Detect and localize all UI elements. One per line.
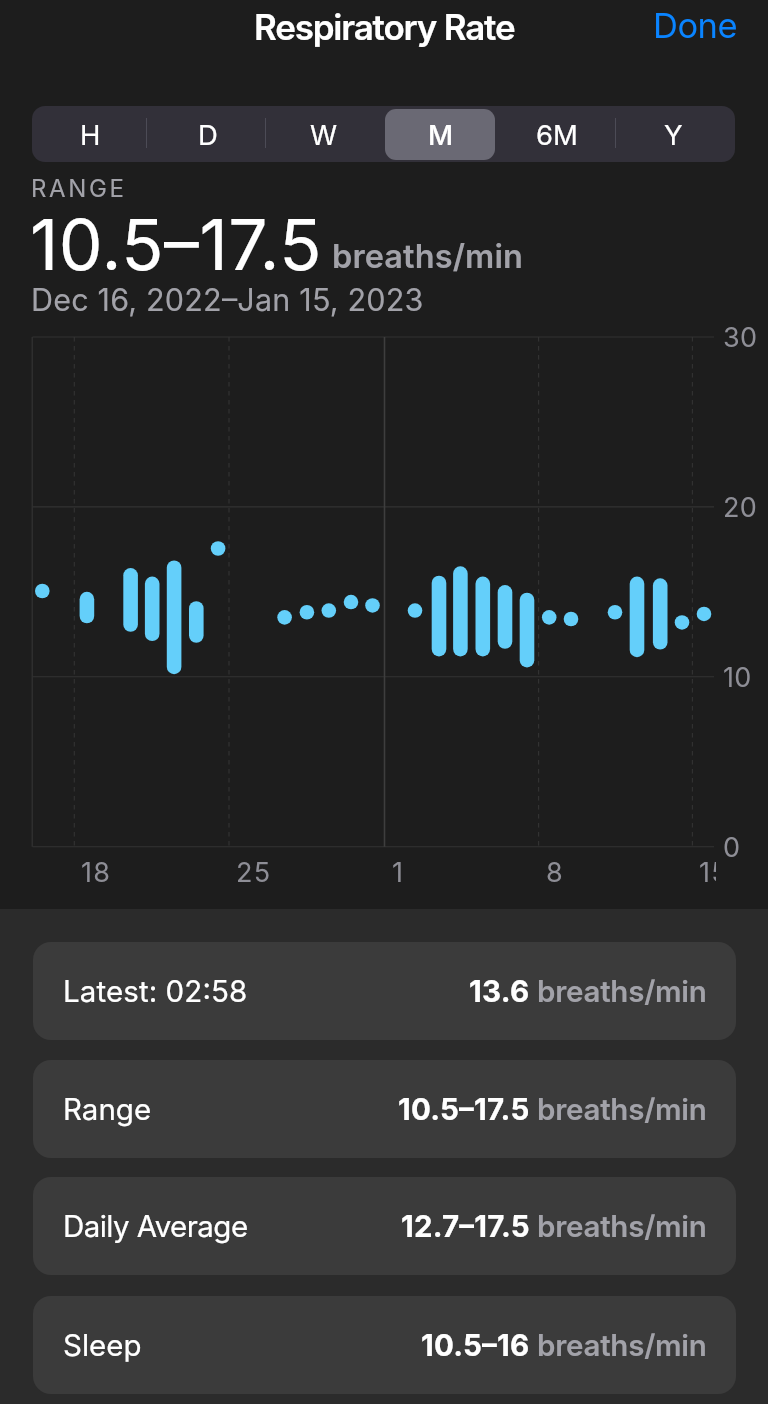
- staticText: 6M: [536, 118, 578, 151]
- staticText: Latest: 02:58: [63, 973, 248, 1009]
- staticText: 18: [81, 856, 112, 889]
- staticText: 13.6: [469, 973, 530, 1009]
- staticText: 8: [546, 856, 564, 889]
- staticText: M: [428, 118, 454, 151]
- staticText: 0: [723, 831, 741, 864]
- staticText: Respiratory Rate: [254, 6, 515, 48]
- staticText: Sleep: [63, 1327, 142, 1363]
- staticText: 10.5–17.5: [398, 1091, 530, 1127]
- staticText: 10.5–17.5: [30, 203, 322, 287]
- button[interactable]: 6M: [498, 106, 615, 162]
- button[interactable]: Done: [627, 0, 768, 56]
- staticText: Dec 16, 2022–Jan 15, 2023: [31, 281, 424, 318]
- staticText: D: [198, 118, 218, 151]
- staticText: RANGE: [31, 174, 127, 203]
- button[interactable]: W: [265, 106, 382, 162]
- staticText: W: [310, 118, 338, 151]
- button[interactable]: M: [382, 106, 499, 162]
- button[interactable]: Daily Average: [33, 1177, 736, 1275]
- button[interactable]: Y: [615, 106, 732, 162]
- staticText: Range: [63, 1091, 152, 1127]
- staticText: breaths/min: [537, 1208, 707, 1244]
- staticText: Done: [653, 5, 738, 43]
- staticText: Y: [664, 118, 683, 151]
- staticText: H: [80, 118, 101, 151]
- staticText: Daily Average: [63, 1208, 248, 1244]
- staticText: 25: [236, 856, 272, 889]
- button[interactable]: D: [149, 106, 266, 162]
- staticText: 1: [392, 856, 405, 889]
- staticText: 20: [723, 491, 758, 524]
- staticText: 15: [699, 856, 716, 889]
- staticText: 10: [723, 661, 752, 694]
- staticText: 30: [723, 321, 758, 354]
- staticText: 12.7–17.5: [401, 1208, 530, 1244]
- staticText: breaths/min: [537, 1091, 707, 1127]
- staticText: breaths/min: [537, 1327, 707, 1363]
- button[interactable]: H: [32, 106, 149, 162]
- button[interactable]: Latest: 02:58: [33, 942, 736, 1040]
- staticText: 10.5–16: [421, 1327, 530, 1363]
- button[interactable]: Sleep: [33, 1296, 736, 1394]
- staticText: breaths/min: [537, 973, 707, 1009]
- staticText: breaths/min: [332, 237, 524, 276]
- button[interactable]: Range: [33, 1060, 736, 1158]
